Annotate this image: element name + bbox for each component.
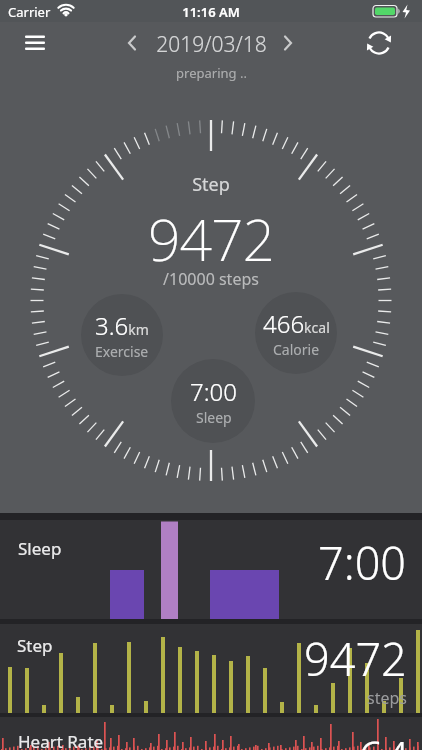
- staticText: 7:00: [318, 532, 407, 593]
- button[interactable]: [114, 29, 142, 57]
- staticText: Carrier: [8, 3, 51, 21]
- staticText: /10000 steps: [163, 268, 259, 290]
- staticText: Step: [192, 172, 230, 197]
- button[interactable]: 466kcal: [255, 292, 337, 374]
- button[interactable]: 3.6km: [81, 294, 163, 376]
- staticText: 466kcal: [263, 307, 330, 340]
- button[interactable]: Sleep: [0, 520, 422, 619]
- staticText: steps: [367, 687, 407, 709]
- staticText: Exercise: [95, 342, 149, 361]
- staticText: Sleep: [18, 537, 62, 560]
- staticText: 3.6km: [95, 309, 149, 342]
- button[interactable]: [363, 27, 395, 59]
- button[interactable]: [15, 29, 55, 57]
- staticText: 7:00: [190, 375, 237, 408]
- staticText: Calorie: [273, 340, 320, 359]
- staticText: Sleep: [196, 408, 232, 427]
- staticText: 9472: [304, 628, 407, 689]
- button[interactable]: [278, 29, 306, 57]
- staticText: Heart Rate: [18, 730, 104, 750]
- staticText: 9472: [148, 200, 274, 278]
- staticText: Step: [17, 634, 53, 657]
- button[interactable]: Heart Rate: [0, 717, 422, 750]
- staticText: 64: [358, 727, 410, 750]
- staticText: 2019/03/18: [156, 30, 267, 59]
- staticText: 11:16 AM: [182, 3, 240, 21]
- button[interactable]: 7:00: [171, 359, 255, 443]
- staticText: preparing ..: [176, 64, 247, 82]
- button[interactable]: Step: [0, 624, 422, 713]
